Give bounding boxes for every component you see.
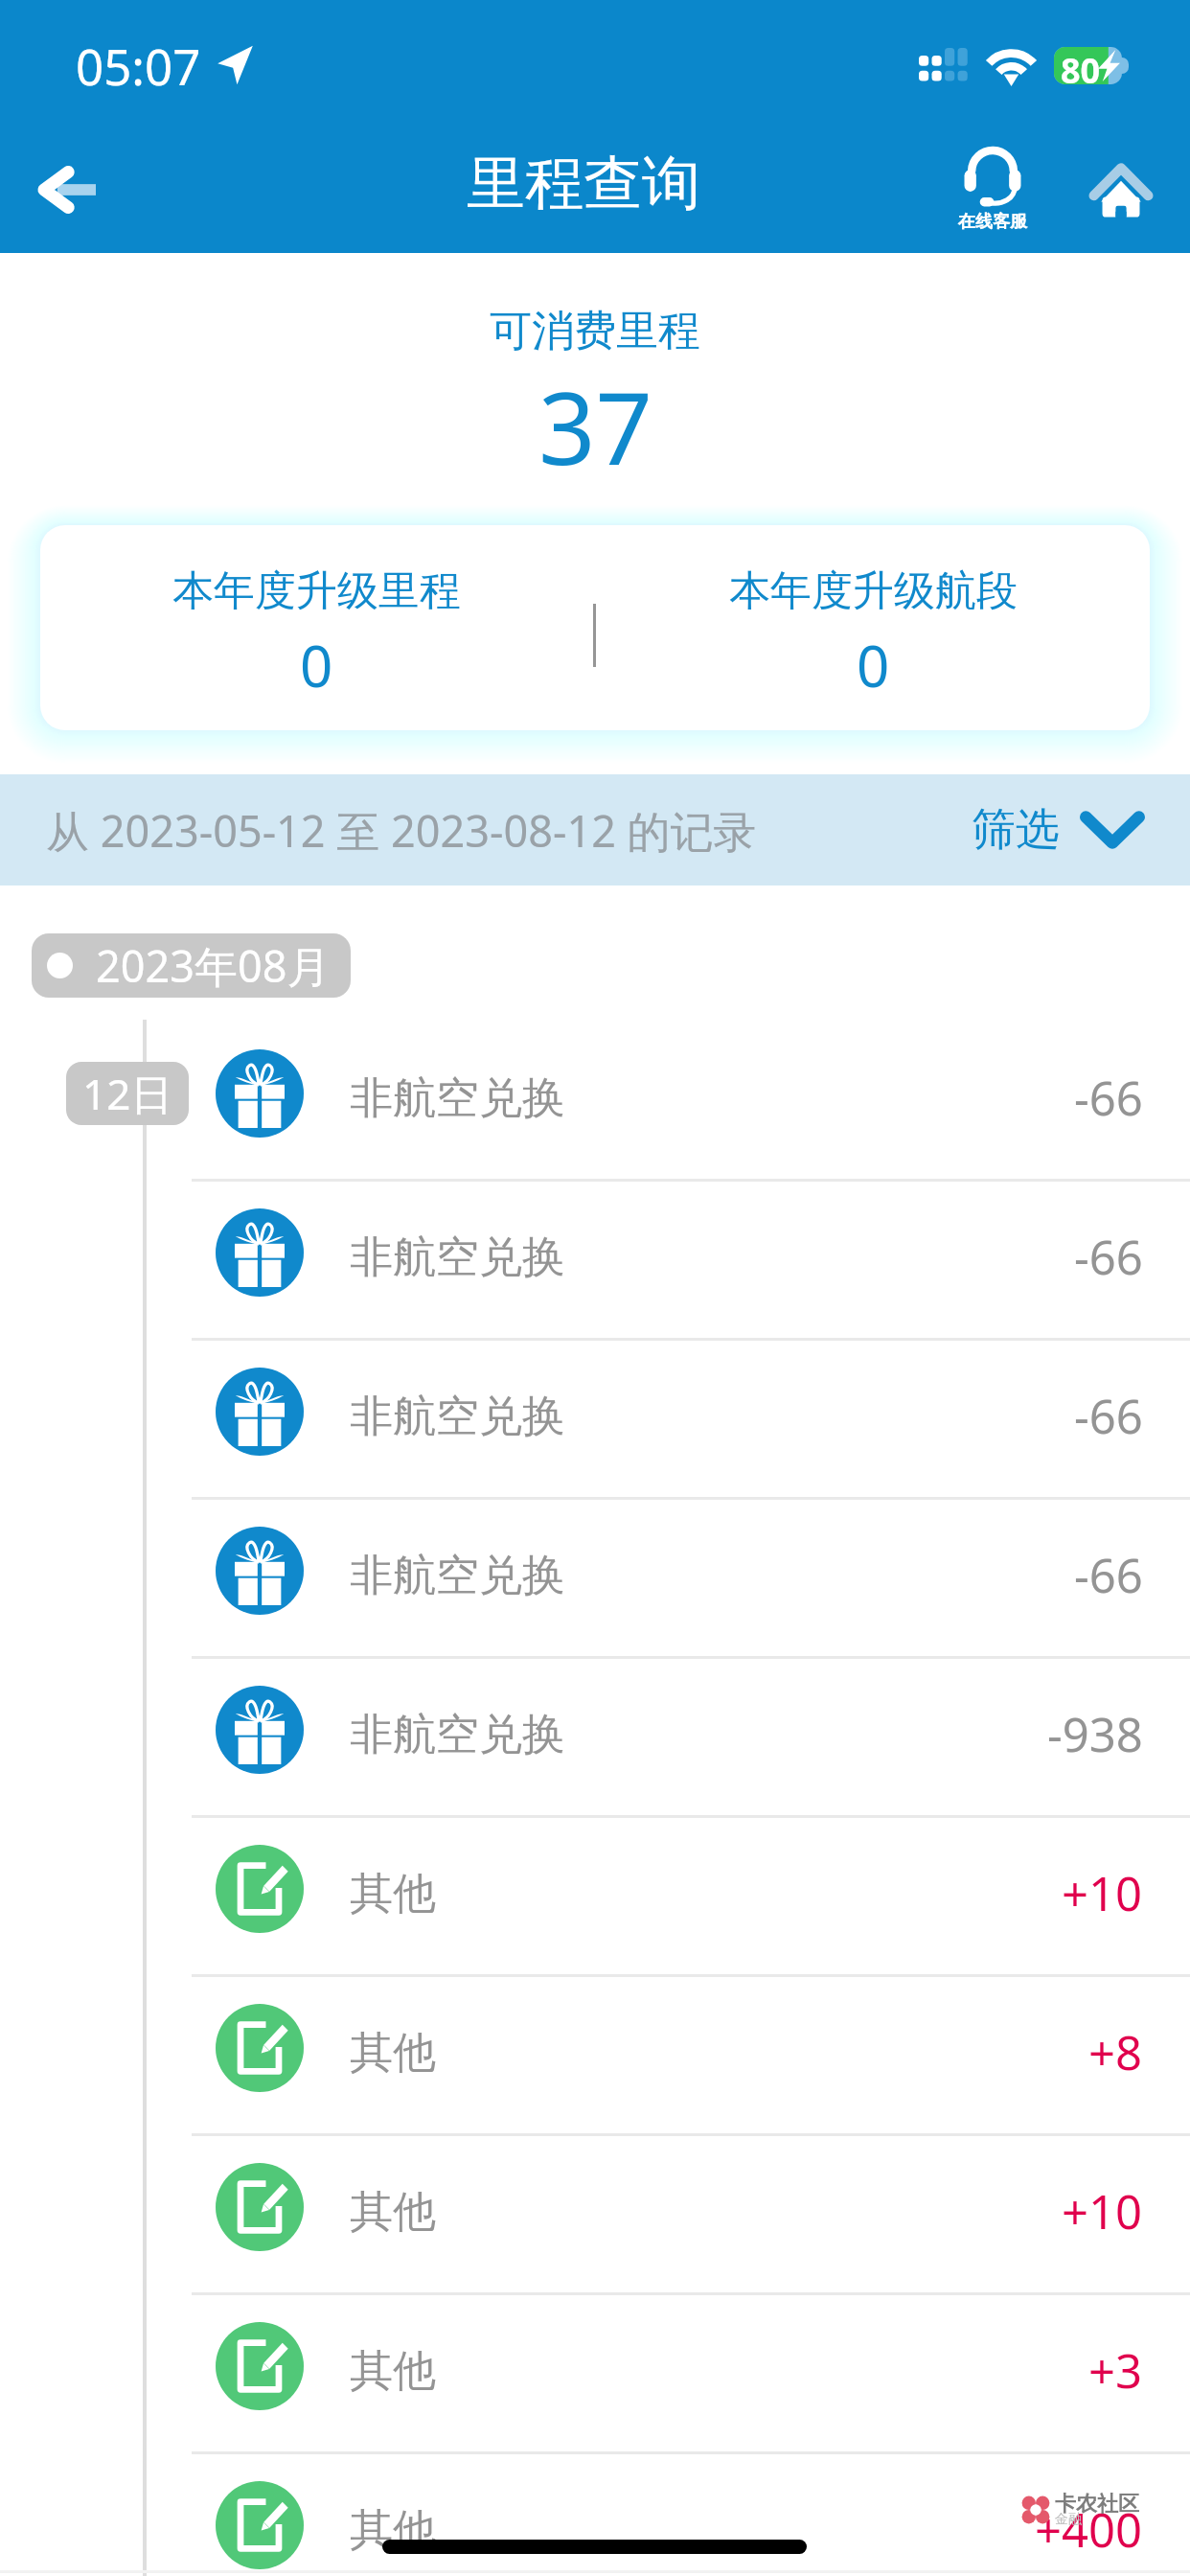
button[interactable]: 其他 <box>0 2136 1190 2292</box>
staticText: 非航空兑换 <box>350 1549 565 1603</box>
staticText: -938 <box>1047 1702 1143 1766</box>
staticText: 12日 <box>82 1065 173 1122</box>
staticText: 2023年08月 <box>96 936 331 995</box>
staticText: 非航空兑换 <box>350 1708 565 1762</box>
button[interactable]: 在线客服 <box>941 131 1044 250</box>
staticText: 卡农社区 <box>1055 2491 1139 2518</box>
staticText: -66 <box>1074 1543 1143 1607</box>
staticText: -66 <box>1074 1384 1143 1448</box>
button[interactable]: 非航空兑换 <box>0 1500 1190 1656</box>
button[interactable]: 筛选 <box>964 802 1152 858</box>
button[interactable]: Home <box>1067 129 1175 237</box>
staticText: 其他 <box>350 2026 436 2081</box>
button[interactable]: 12日 <box>0 1023 1190 1179</box>
staticText: 其他 <box>350 2344 436 2399</box>
staticText: 金融 <box>1055 2511 1082 2528</box>
staticText: 0 <box>857 626 890 704</box>
button[interactable]: 其他 <box>0 1818 1190 1974</box>
staticText: +400 <box>1035 2497 1143 2562</box>
staticText: 非航空兑换 <box>350 1390 565 1444</box>
staticText: 37 <box>538 358 652 494</box>
button[interactable]: 其他 <box>0 2454 1190 2576</box>
staticText: 筛选 <box>972 802 1060 858</box>
staticText: 其他 <box>350 2185 436 2240</box>
staticText: 从 2023-05-12 至 2023-08-12 的记录 <box>46 801 757 860</box>
staticText: 非航空兑换 <box>350 1071 565 1126</box>
staticText: +10 <box>1062 1861 1143 1925</box>
button[interactable]: 非航空兑换 <box>0 1659 1190 1815</box>
button[interactable]: Back <box>17 132 119 234</box>
button[interactable]: 非航空兑换 <box>0 1182 1190 1338</box>
button[interactable]: 非航空兑换 <box>0 1341 1190 1497</box>
button[interactable]: 其他 <box>0 1977 1190 2133</box>
staticText: 80 <box>1061 47 1101 84</box>
staticText: -66 <box>1074 1066 1143 1130</box>
staticText: 本年度升级里程 <box>172 565 461 617</box>
staticText: -66 <box>1074 1225 1143 1289</box>
button[interactable]: 本年度升级航段 <box>596 525 1150 730</box>
button[interactable]: 本年度升级里程 <box>40 525 593 730</box>
staticText: 本年度升级航段 <box>729 565 1018 617</box>
staticText: 里程查询 <box>467 147 700 220</box>
staticText: +3 <box>1088 2338 1143 2403</box>
staticText: 可消费里程 <box>490 305 700 357</box>
staticText: +10 <box>1062 2179 1143 2243</box>
button[interactable]: 其他 <box>0 2295 1190 2451</box>
staticText: 非航空兑换 <box>350 1230 565 1285</box>
staticText: 0 <box>300 626 333 704</box>
staticText: 05:07 <box>76 33 201 99</box>
staticText: 其他 <box>350 2503 436 2558</box>
staticText: 其他 <box>350 1867 436 1921</box>
staticText: 在线客服 <box>958 211 1027 233</box>
staticText: +8 <box>1088 2020 1143 2084</box>
